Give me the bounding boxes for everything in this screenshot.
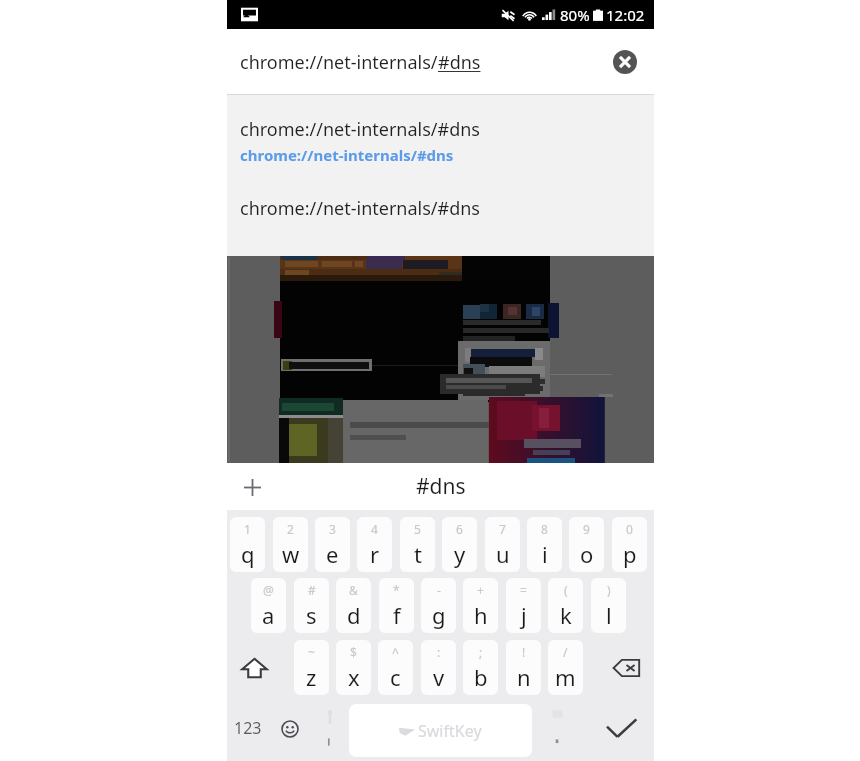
staticText: x [348,662,360,692]
staticText: d [347,600,361,630]
staticText: / [563,644,568,660]
button[interactable]: 1 [230,517,265,572]
staticText: u [496,539,510,569]
button[interactable]: / [548,640,583,695]
staticText: @ [263,582,274,598]
staticText: 3 [329,521,336,537]
staticText: 1 [244,521,251,537]
staticText: ) [607,582,611,598]
staticText: g [432,600,446,630]
staticText: f [393,600,401,630]
button[interactable]: chrome://net-internals/#dns [227,117,654,191]
staticText: 7 [499,521,506,537]
staticText: chrome://net-internals/ [240,50,438,75]
staticText: j [521,600,527,630]
button[interactable]: * [379,578,414,633]
staticText: $ [350,644,357,660]
staticText: chrome://net-internals/#dns [240,196,480,221]
button[interactable]: Comma [313,702,347,754]
button[interactable]: ) [591,578,626,633]
button[interactable]: ^ [378,640,413,695]
staticText: 5 [414,521,421,537]
button[interactable]: $ [336,640,371,695]
staticText: = [520,582,527,598]
staticText: 9 [583,521,590,537]
staticText: & [349,582,358,598]
staticText: s [306,600,317,630]
staticText: o [580,539,594,569]
button[interactable]: Emoji [271,703,309,755]
button[interactable]: Period [539,702,577,754]
staticText: #dns [416,472,466,501]
staticText: y [454,539,466,569]
button[interactable]: Enter [594,702,649,754]
staticText: b [474,662,488,692]
staticText: k [560,600,572,630]
staticText: w [282,539,300,569]
staticText: i [542,539,548,569]
button[interactable]: # [294,578,329,633]
button[interactable]: ! [506,640,541,695]
button[interactable]: 2 [273,517,308,572]
button[interactable]: chrome://net-internals/#dns [227,196,654,236]
staticText: t [414,539,422,569]
button[interactable]: = [506,578,541,633]
staticText: a [262,600,275,630]
staticText: 4 [371,521,378,537]
staticText: c [390,662,401,692]
staticText: ( [564,582,568,598]
staticText: chrome://net-internals/#dns [240,145,454,165]
button[interactable]: @ [251,578,286,633]
staticText: h [474,600,488,630]
staticText: + [477,582,484,598]
staticText: # [308,582,316,598]
staticText: SwiftKey [418,720,482,742]
staticText: e [326,539,339,569]
staticText: p [623,539,637,569]
button[interactable]: #dns [416,472,466,501]
staticText: q [241,539,255,569]
button[interactable]: Space [349,704,532,757]
staticText: ! [522,644,526,660]
staticText: 12:02 [606,5,645,25]
staticText: #dns [438,50,481,75]
staticText: 8 [541,521,548,537]
button[interactable]: + [463,578,498,633]
button[interactable]: - [421,578,456,633]
button[interactable]: 3 [315,517,350,572]
button[interactable]: Shift [231,640,277,695]
staticText: z [306,662,317,692]
staticText: chrome://net-internals/#dns [240,117,480,142]
staticText: l [606,600,612,630]
staticText: ; [479,644,483,660]
staticText: 80% [560,5,590,25]
button[interactable]: ; [463,640,498,695]
staticText: 123 [234,717,262,739]
button[interactable]: Backspace [603,640,649,695]
button[interactable]: 8 [527,517,562,572]
staticText: ^ [392,644,399,660]
button[interactable]: ~ [294,640,329,695]
staticText: 0 [626,521,633,537]
button[interactable]: ( [548,578,583,633]
button[interactable]: : [421,640,456,695]
button[interactable]: 7 [485,517,520,572]
button[interactable]: 5 [400,517,435,572]
staticText: m [555,662,576,692]
button[interactable]: Add shortcut [230,465,274,509]
staticText: ~ [308,644,315,660]
staticText: * [393,582,400,598]
staticText: 2 [287,521,294,537]
staticText: v [433,662,445,692]
staticText: r [370,539,380,569]
staticText: n [517,662,531,692]
button[interactable]: 0 [612,517,647,572]
staticText: - [437,582,441,598]
button[interactable]: 123 [227,702,269,754]
button[interactable]: Clear text [602,39,648,85]
button[interactable]: & [336,578,371,633]
button[interactable]: 9 [569,517,604,572]
button[interactable]: 4 [357,517,392,572]
button[interactable]: 6 [442,517,477,572]
staticText: : [437,644,441,660]
